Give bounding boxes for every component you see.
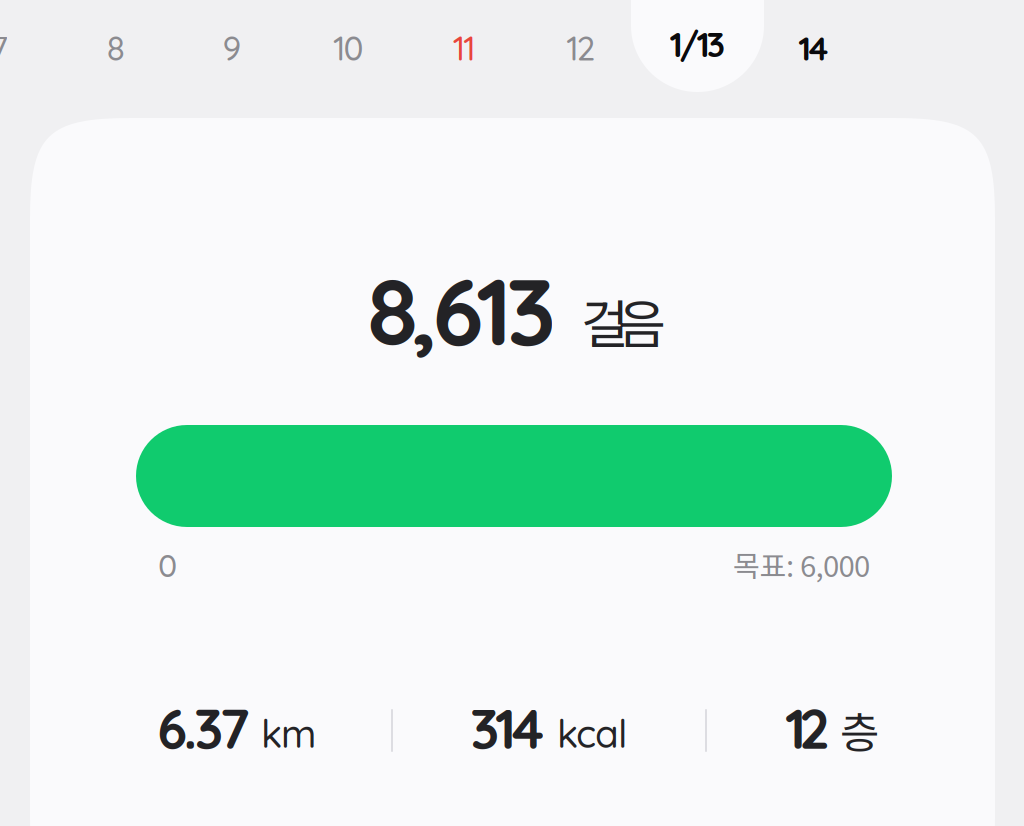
staticText: 6.37 bbox=[157, 694, 249, 762]
staticText: 12 bbox=[785, 694, 830, 762]
button[interactable]: 7 bbox=[0, 0, 54, 96]
button[interactable]: 10 bbox=[293, 0, 403, 96]
staticText: 14 bbox=[798, 27, 829, 69]
staticText: 목표: 6,000 bbox=[733, 543, 870, 585]
staticText: 12 bbox=[566, 27, 596, 69]
staticText: 걸음 bbox=[581, 283, 666, 358]
staticText: 10 bbox=[333, 27, 363, 69]
staticText: 8 bbox=[107, 27, 125, 69]
button[interactable]: 1/13 bbox=[631, 0, 764, 92]
staticText: 1/13 bbox=[669, 22, 725, 66]
button[interactable]: kcal bbox=[30, 118, 100, 166]
button[interactable]: 8 bbox=[61, 0, 171, 96]
staticText: 층 bbox=[840, 699, 879, 761]
staticText: 11 bbox=[453, 27, 476, 69]
staticText: km bbox=[261, 709, 316, 757]
button[interactable]: 층 bbox=[30, 118, 69, 180]
button[interactable]: 12 bbox=[30, 118, 75, 186]
staticText: 9 bbox=[222, 27, 241, 69]
staticText: 0 bbox=[158, 545, 177, 585]
staticText: 7 bbox=[0, 27, 8, 69]
button[interactable]: 14 bbox=[758, 0, 868, 96]
button[interactable]: 6.37 bbox=[30, 118, 122, 186]
button[interactable]: km bbox=[30, 118, 85, 166]
staticText: 8,613 bbox=[367, 252, 556, 369]
button[interactable]: 12 bbox=[526, 0, 636, 96]
staticText: kcal bbox=[557, 709, 627, 757]
button[interactable]: 11 bbox=[410, 0, 520, 96]
staticText: 314 bbox=[470, 694, 544, 762]
button[interactable]: 314 bbox=[30, 118, 104, 186]
button[interactable]: 9 bbox=[177, 0, 287, 96]
